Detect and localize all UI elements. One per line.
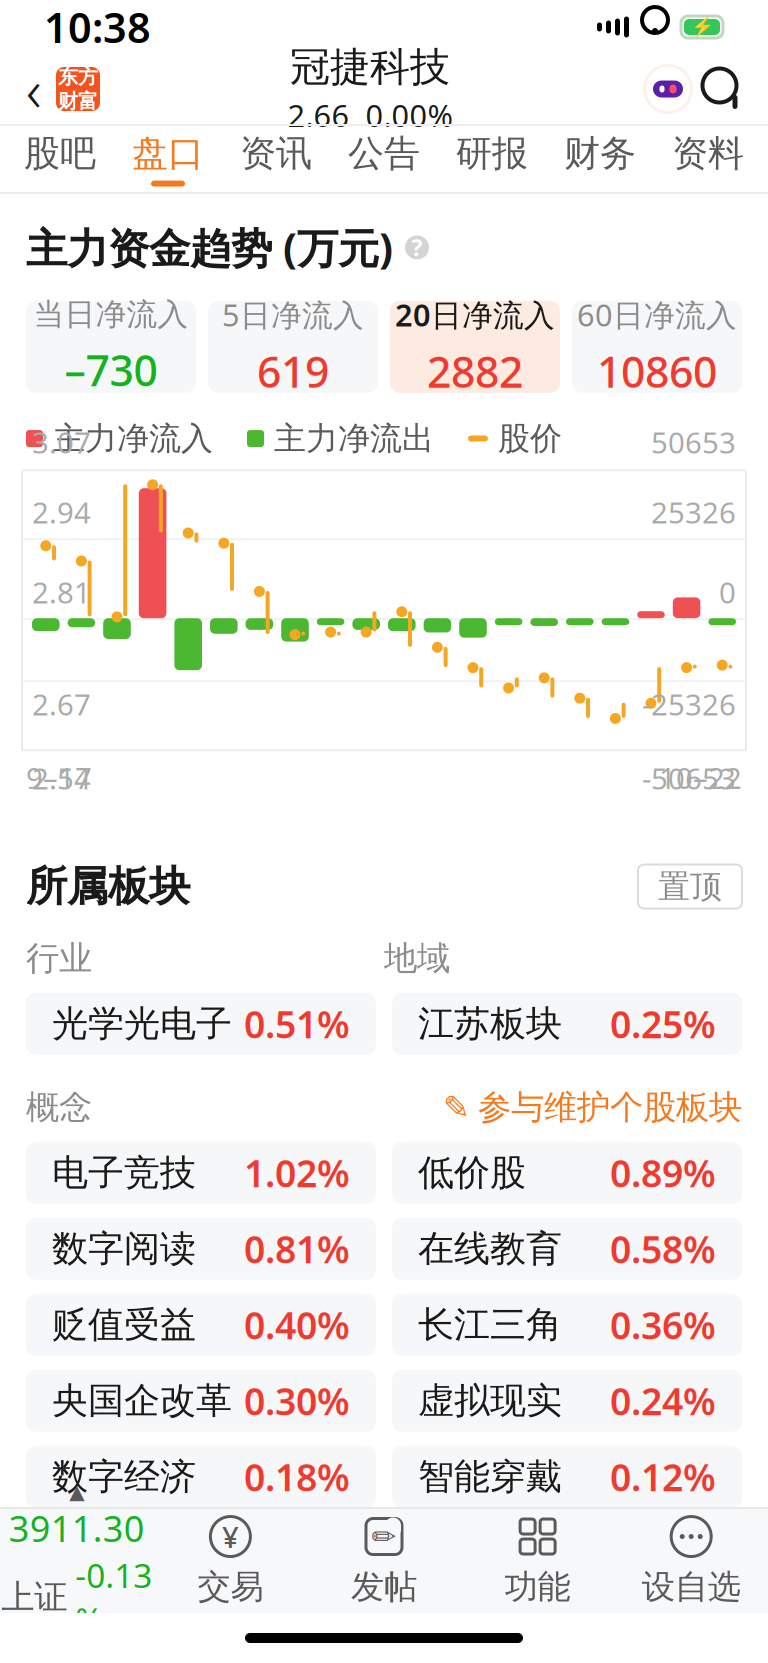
staticText: 光学光电子 [52, 1002, 232, 1046]
button[interactable]: 低价股 [392, 1142, 742, 1204]
button[interactable]: 研报 [438, 126, 546, 192]
staticText: 发帖 [351, 1566, 417, 1607]
staticText: 概念 [26, 1087, 92, 1128]
staticText: 地域 [384, 938, 450, 979]
staticText: 2.54 [32, 759, 91, 798]
button[interactable]: 长江三角 [392, 1294, 742, 1356]
button[interactable]: ✎ [443, 1087, 742, 1128]
staticText: 电子竞技 [52, 1151, 196, 1195]
staticText: 东方 [58, 64, 98, 89]
button[interactable]: 5日净流入 [208, 301, 378, 393]
staticText: ¥ [222, 1517, 239, 1556]
staticText: 在线教育 [418, 1227, 562, 1271]
staticText: 2.67 [32, 685, 91, 724]
staticText: 0.40% [244, 1300, 350, 1350]
staticText: 1.02% [244, 1148, 350, 1198]
button[interactable]: 20日净流入 [390, 301, 560, 393]
staticText: 低价股 [418, 1151, 526, 1195]
staticText: 财务 [564, 131, 636, 176]
staticText: 冠捷科技 [290, 43, 450, 92]
button[interactable]: Search [696, 58, 750, 120]
button[interactable]: 虚拟现实 [392, 1370, 742, 1432]
staticText: 2882 [427, 343, 523, 400]
staticText: –730 [64, 341, 157, 398]
staticText: 设自选 [642, 1566, 741, 1607]
staticText: 交易 [197, 1566, 263, 1607]
button[interactable]: 数字阅读 [26, 1218, 376, 1280]
staticText: 50653 [651, 423, 736, 462]
staticText: -25326 [642, 685, 736, 724]
button[interactable]: 央国企改革 [26, 1370, 376, 1432]
staticText: 数字阅读 [52, 1227, 196, 1271]
button[interactable]: 功能 [461, 1509, 614, 1613]
staticText: 0.36% [610, 1300, 716, 1350]
staticText: 2.81 [32, 573, 91, 612]
button[interactable]: 当日净流入 [26, 301, 196, 393]
staticText: 虚拟现实 [418, 1379, 562, 1423]
staticText: 参与维护个股板块 [478, 1087, 742, 1128]
staticText: ✎ [443, 1089, 470, 1125]
button[interactable]: 股吧 [6, 126, 114, 192]
button[interactable]: 财务 [546, 126, 654, 192]
staticText: 0.51% [244, 999, 350, 1049]
staticText: 0.89% [610, 1148, 716, 1198]
staticText: -0.13% [75, 1553, 152, 1641]
button[interactable]: 公告 [330, 126, 438, 192]
button[interactable]: 江苏板块 [392, 993, 742, 1055]
staticText: 0.12% [610, 1452, 716, 1502]
staticText: 0.24% [610, 1376, 716, 1426]
staticText: 资讯 [240, 131, 312, 176]
button[interactable]: 交易 [154, 1509, 307, 1613]
staticText: 0.25% [610, 999, 716, 1049]
staticText: 盘口 [132, 131, 204, 176]
staticText: 0.30% [244, 1376, 350, 1426]
staticText: -50653 [642, 759, 736, 798]
staticText: 619 [257, 343, 329, 400]
staticText: 主力净流出 [274, 419, 434, 458]
button[interactable]: AI Assistant [640, 58, 696, 120]
button[interactable]: 电子竞技 [26, 1142, 376, 1204]
staticText: 上证 [1, 1577, 67, 1618]
button[interactable]: Help [405, 232, 429, 262]
staticText: 所属板块 [26, 861, 190, 912]
button[interactable]: 智能穿戴 [392, 1446, 742, 1508]
staticText: ? [411, 232, 422, 262]
button[interactable]: 设自选 [614, 1509, 768, 1613]
button[interactable]: 盘口 [114, 126, 222, 192]
button[interactable]: 发帖 [307, 1509, 461, 1613]
staticText: 当日净流入 [33, 296, 188, 333]
staticText: 股吧 [24, 131, 96, 176]
staticText: ✏ [371, 1520, 396, 1553]
staticText: 25326 [651, 493, 736, 532]
staticText: 9–17 [26, 758, 92, 797]
staticText: 0.18% [244, 1452, 350, 1502]
staticText: 10:38 [44, 0, 151, 54]
button[interactable]: 资料 [654, 126, 762, 192]
button[interactable]: 贬值受益 [26, 1294, 376, 1356]
staticText: 公告 [348, 131, 420, 176]
staticText: 行业 [26, 938, 92, 979]
button[interactable]: ▲ [0, 1509, 154, 1613]
button[interactable]: Back [12, 58, 56, 120]
staticText: 主力净流入 [53, 419, 213, 458]
staticText: 财富 [58, 89, 98, 114]
staticText: 股价 [498, 419, 562, 458]
button[interactable]: 数字经济 [26, 1446, 376, 1508]
button[interactable]: 光学光电子 [26, 993, 376, 1055]
staticText: 0.58% [610, 1224, 716, 1274]
button[interactable]: 置顶 [638, 864, 742, 908]
staticText: 2.94 [32, 493, 91, 532]
staticText: 功能 [505, 1566, 571, 1607]
staticText: 0.81% [244, 1224, 350, 1274]
staticText: 5日净流入 [222, 294, 364, 335]
button[interactable]: 东方财富 Home [56, 67, 100, 111]
staticText: 研报 [456, 131, 528, 176]
staticText: 0 [719, 573, 736, 612]
staticText: 2.66 0.00% [287, 95, 452, 135]
button[interactable]: 资讯 [222, 126, 330, 192]
staticText: 10860 [597, 343, 717, 400]
staticText: 20日净流入 [395, 294, 555, 335]
button[interactable]: 60日净流入 [572, 301, 742, 393]
staticText: ⚡ [690, 16, 713, 38]
button[interactable]: 在线教育 [392, 1218, 742, 1280]
